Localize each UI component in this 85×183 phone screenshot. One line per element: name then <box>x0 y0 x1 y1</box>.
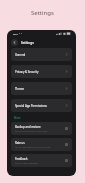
button[interactable]: Special App Permissions <box>11 99 72 112</box>
staticText: Sync all your data to your cloud <box>15 130 48 133</box>
staticText: Send us your feedback <box>15 162 39 165</box>
staticText: Settings <box>31 9 54 17</box>
button[interactable]: General <box>11 48 72 61</box>
button[interactable]: Feedback <box>11 154 72 167</box>
button[interactable]: Theme <box>11 82 72 95</box>
staticText: Rate us <box>15 141 25 145</box>
staticText: Backup and restore <box>15 125 41 129</box>
staticText: Feedback <box>15 157 28 161</box>
staticText: Theme <box>15 87 25 91</box>
staticText: Settings <box>21 41 34 45</box>
staticText: 9:41 <box>13 32 18 35</box>
staticText: Privacy & Security <box>15 70 39 74</box>
button[interactable]: Back <box>11 39 18 46</box>
staticText: General <box>15 53 26 57</box>
button[interactable]: Backup and restore <box>11 122 72 135</box>
button[interactable]: Rate us <box>11 138 72 151</box>
button[interactable]: Privacy & Security <box>11 65 72 78</box>
staticText: More <box>14 116 21 120</box>
staticText: Tell us how much you love our app <box>15 146 51 149</box>
staticText: Special App Permissions <box>15 104 47 108</box>
